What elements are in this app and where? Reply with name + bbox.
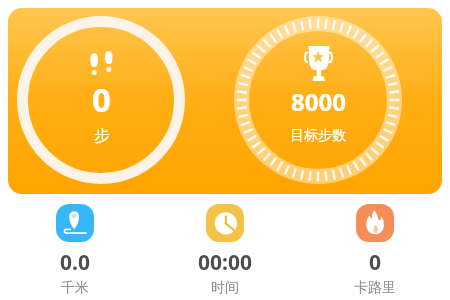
staticText: 0 xyxy=(92,77,111,122)
staticText: 卡路里 xyxy=(354,279,396,297)
staticText: 8000 xyxy=(291,85,346,118)
staticText: 00:00 xyxy=(198,248,252,277)
staticText: 步 xyxy=(94,126,110,146)
staticText: 目标步数 xyxy=(290,127,346,145)
staticText: 0.0 xyxy=(60,248,90,277)
button[interactable]: 00:00 xyxy=(150,204,300,297)
staticText: 千米 xyxy=(61,279,89,297)
button[interactable]: 0 xyxy=(300,204,450,297)
button[interactable]: 0.0 xyxy=(0,204,150,297)
staticText: 时间 xyxy=(211,279,239,297)
staticText: 0 xyxy=(369,248,382,277)
